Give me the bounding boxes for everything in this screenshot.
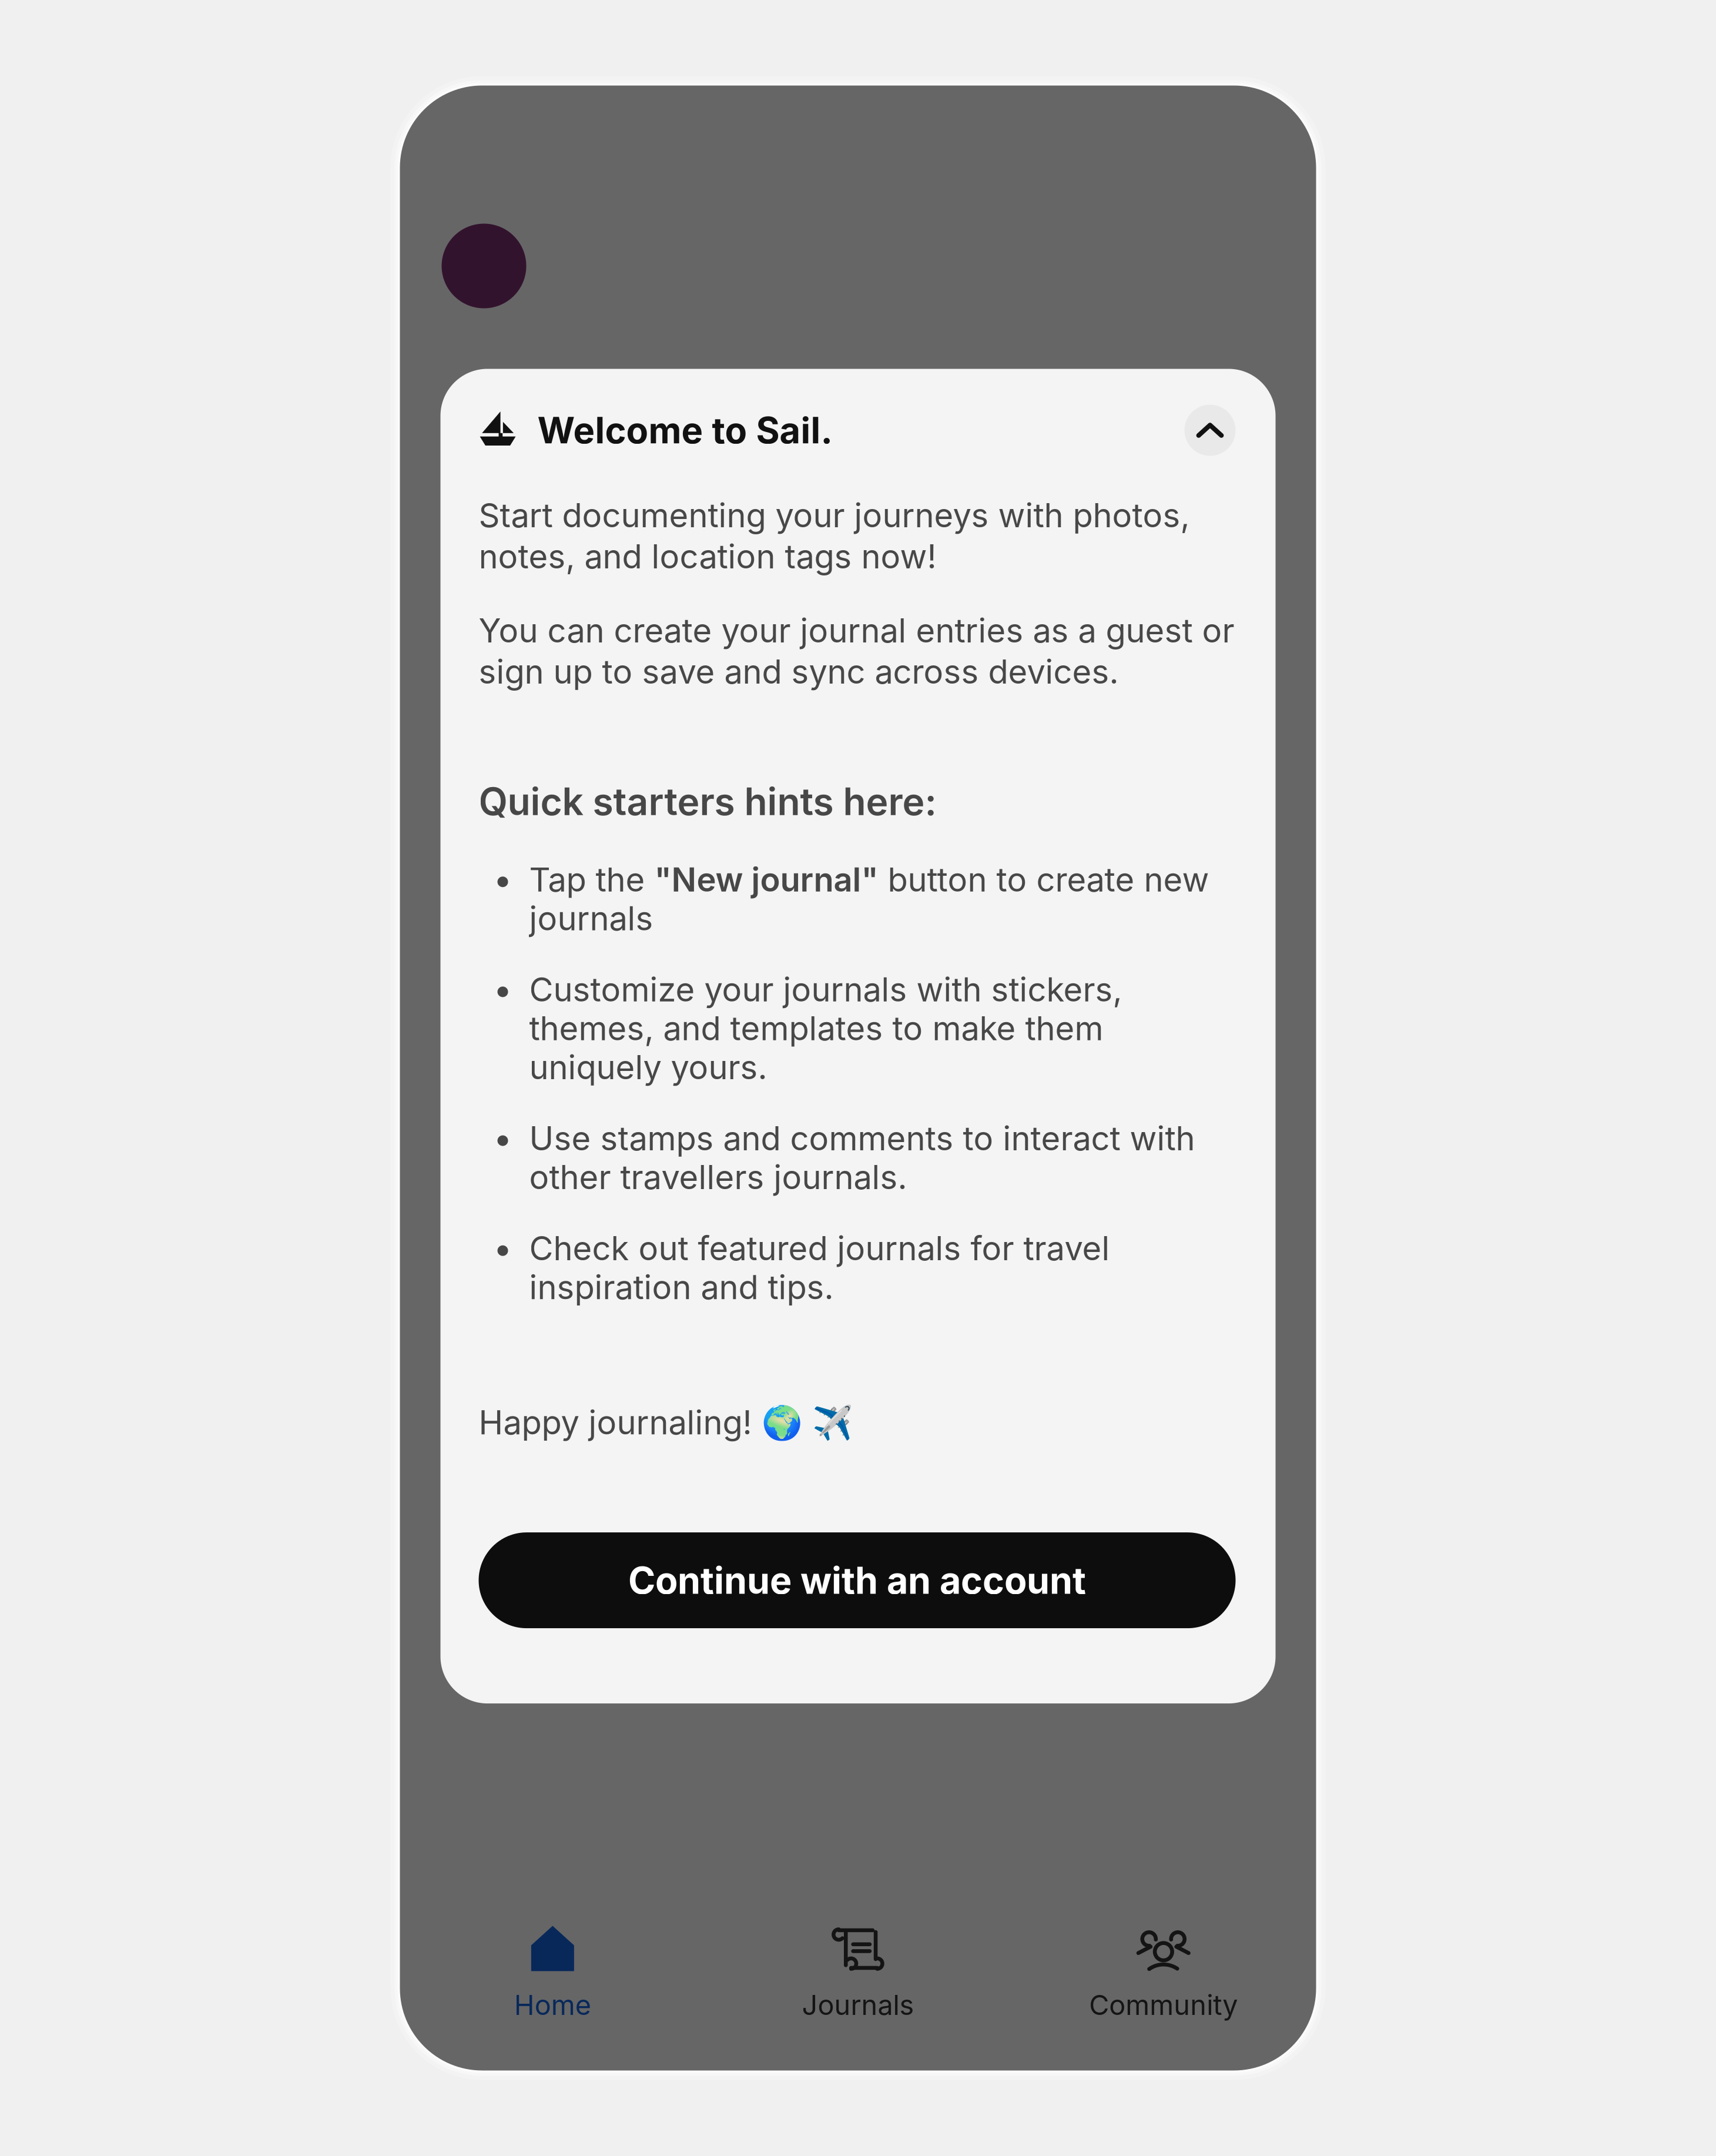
staticText: Journals bbox=[802, 1989, 914, 2021]
button[interactable]: Community bbox=[1011, 1921, 1316, 2021]
staticText: Continue with an account bbox=[628, 1559, 1086, 1602]
staticText: Welcome to Sail. bbox=[537, 409, 832, 452]
staticText: Community bbox=[1089, 1989, 1238, 2021]
button[interactable]: Continue with an account bbox=[479, 1532, 1236, 1628]
staticText: Customize your journals with stickers, t… bbox=[529, 970, 1122, 1087]
staticText: Quick starters hints here: bbox=[479, 779, 936, 824]
staticText: Check out featured journals for travel i… bbox=[529, 1229, 1110, 1307]
staticText: Tap the "New journal" button to create n… bbox=[529, 860, 1209, 938]
staticText: You can create your journal entries as a… bbox=[479, 611, 1234, 691]
button[interactable]: Journals bbox=[705, 1921, 1011, 2021]
button[interactable]: Home bbox=[400, 1921, 705, 2021]
button[interactable]: Collapse bbox=[1184, 405, 1236, 456]
staticText: Start documenting your journeys with pho… bbox=[479, 496, 1190, 576]
staticText: Happy journaling! 🌍 ✈️ bbox=[479, 1403, 853, 1442]
staticText: Home bbox=[514, 1989, 591, 2021]
staticText: Use stamps and comments to interact with… bbox=[529, 1119, 1195, 1197]
